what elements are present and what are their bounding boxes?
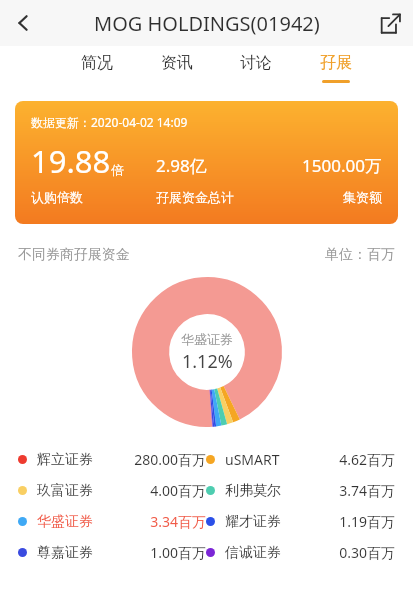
staticText: 耀才证券 <box>225 513 281 531</box>
button[interactable]: 孖展 <box>311 46 361 90</box>
button[interactable]: 讨论 <box>231 46 281 90</box>
button[interactable]: Share <box>367 0 413 46</box>
staticText: 集资额 <box>343 189 382 205</box>
staticText: 资讯 <box>161 53 193 73</box>
staticText: 倍 <box>111 162 124 178</box>
button[interactable]: 尊嘉证券 <box>18 537 206 568</box>
staticText: 4.00百万 <box>150 481 206 500</box>
staticText: MOG HOLDINGS(01942) <box>94 10 320 37</box>
button[interactable]: uSMART <box>206 444 395 475</box>
staticText: 1.00百万 <box>150 543 206 562</box>
staticText: 孖展 <box>320 53 352 73</box>
staticText: 3.74百万 <box>339 481 395 500</box>
staticText: 利弗莫尔 <box>225 482 281 500</box>
staticText: 讨论 <box>240 53 272 73</box>
staticText: 19.88 <box>31 140 111 182</box>
button[interactable]: 辉立证券 <box>18 444 206 475</box>
staticText: 1500.00万 <box>302 154 382 177</box>
staticText: 孖展资金总计 <box>156 189 234 205</box>
button[interactable]: 资讯 <box>152 46 202 90</box>
staticText: 280.00百万 <box>134 450 206 469</box>
staticText: 华盛证券 <box>37 513 93 531</box>
staticText: 0.30百万 <box>339 543 395 562</box>
button[interactable]: 信诚证券 <box>206 537 395 568</box>
button[interactable]: 玖富证券 <box>18 475 206 506</box>
button[interactable]: 利弗莫尔 <box>206 475 395 506</box>
staticText: 玖富证券 <box>37 482 93 500</box>
button[interactable]: 简况 <box>72 46 122 90</box>
staticText: 3.34百万 <box>150 512 206 531</box>
staticText: 简况 <box>81 53 113 73</box>
staticText: 华盛证券 <box>181 331 233 347</box>
staticText: 4.62百万 <box>339 450 395 469</box>
staticText: 1.19百万 <box>339 512 395 531</box>
staticText: 不同券商孖展资金 <box>18 246 130 264</box>
button[interactable]: 数据更新：2020-04-02 14:09 <box>15 101 398 224</box>
staticText: 2.98亿 <box>156 154 207 177</box>
staticText: 认购倍数 <box>31 189 83 205</box>
button[interactable]: 耀才证券 <box>206 506 395 537</box>
staticText: uSMART <box>225 450 280 469</box>
staticText: 辉立证券 <box>37 451 93 469</box>
staticText: 信诚证券 <box>225 544 281 562</box>
staticText: 单位：百万 <box>325 246 395 264</box>
button[interactable]: 华盛证券 <box>18 506 206 537</box>
staticText: 尊嘉证券 <box>37 544 93 562</box>
staticText: 数据更新：2020-04-02 14:09 <box>31 114 188 130</box>
staticText: 1.12% <box>182 349 233 374</box>
button[interactable]: Back <box>0 0 46 46</box>
